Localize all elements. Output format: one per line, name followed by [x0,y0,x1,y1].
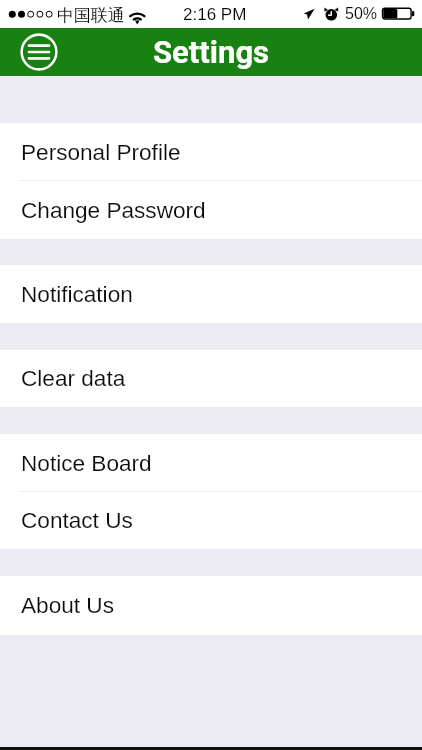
staticText: Change Password [21,198,206,223]
staticText: Contact Us [21,508,133,533]
staticText: About Us [21,593,114,618]
button[interactable]: Contact Us [0,492,422,549]
staticText: Personal Profile [21,140,181,165]
button[interactable]: Notification [0,265,422,323]
staticText: Notice Board [21,451,152,476]
staticText: 50% [345,5,378,23]
staticText: 中国联通 [57,5,125,26]
button[interactable]: Personal Profile [0,123,422,181]
staticText: Clear data [21,366,126,391]
button[interactable]: Clear data [0,350,422,407]
staticText: 2:16 PM [183,5,247,24]
staticText: Settings [153,34,270,70]
button[interactable]: About Us [0,576,422,635]
button[interactable]: Change Password [0,181,422,239]
button[interactable]: Menu [20,33,58,71]
staticText: Notification [21,282,133,307]
button[interactable]: Notice Board [0,434,422,492]
